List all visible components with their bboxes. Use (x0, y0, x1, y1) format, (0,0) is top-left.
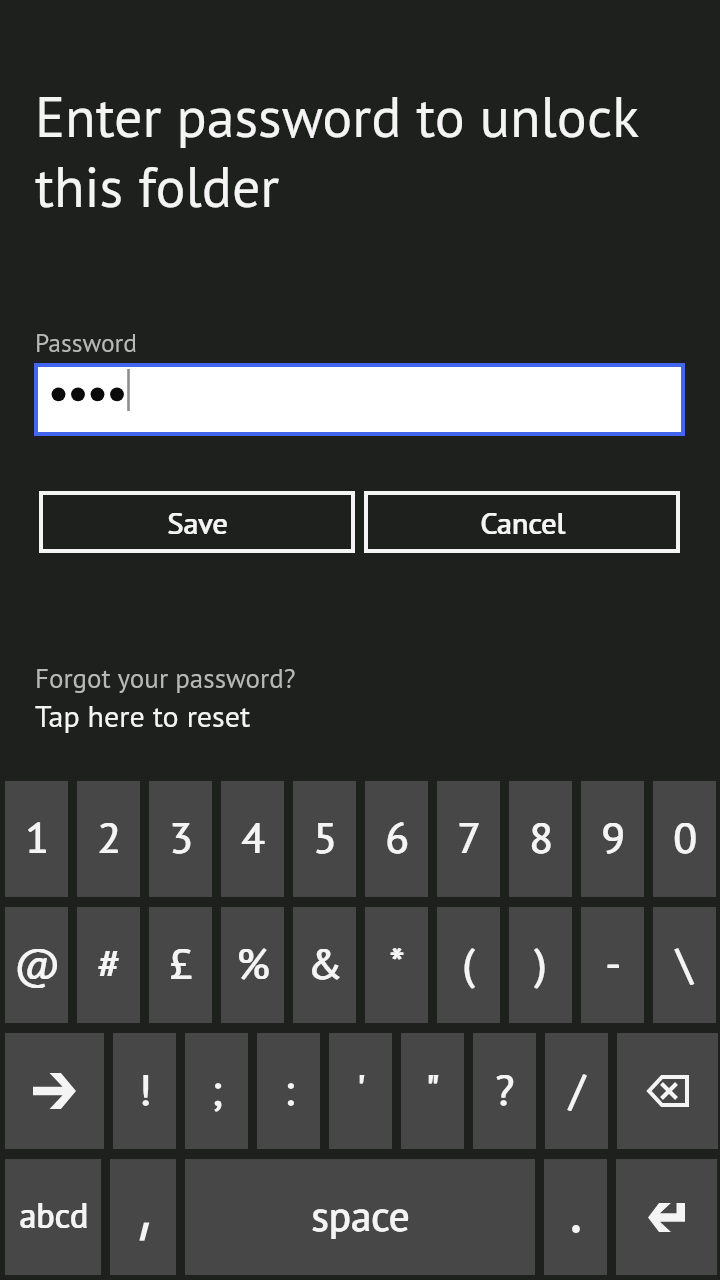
staticText: / (569, 1061, 585, 1117)
staticText: % (236, 935, 270, 991)
staticText: 4 (242, 809, 266, 865)
staticText: ? (495, 1061, 514, 1117)
button[interactable]: Save (39, 491, 355, 553)
button[interactable]: 9 (581, 781, 644, 897)
staticText: 4 (241, 809, 265, 865)
button[interactable]: & (293, 907, 356, 1023)
staticText: 0 (674, 809, 698, 865)
button[interactable]: 3 (149, 781, 212, 897)
button[interactable]: ' (329, 1033, 392, 1149)
staticText: ! (138, 1061, 152, 1117)
staticText: 7 (458, 809, 482, 865)
staticText: ? (496, 1061, 515, 1117)
staticText: * (390, 935, 406, 991)
staticText: * (389, 935, 405, 991)
staticText: / (570, 1061, 586, 1117)
button[interactable]: 1 (5, 781, 68, 897)
button[interactable]: - (581, 907, 644, 1023)
staticText: ) (534, 935, 547, 991)
staticText: 0 (673, 809, 697, 865)
staticText: @ (15, 935, 61, 991)
staticText: - (606, 935, 622, 991)
staticText: % (237, 935, 271, 991)
button[interactable]: / (545, 1033, 608, 1149)
staticText: \ (677, 935, 694, 991)
button[interactable]: * (365, 907, 428, 1023)
staticText: 3 (169, 809, 193, 865)
staticText: Cancel (481, 503, 566, 542)
staticText: Password (35, 326, 138, 359)
staticText: 1 (26, 809, 50, 865)
button[interactable]: 4 (221, 781, 284, 897)
staticText: 2 (98, 809, 122, 865)
staticText: : (285, 1061, 295, 1117)
button[interactable]: ( (437, 907, 500, 1023)
button[interactable]: # (77, 907, 140, 1023)
button[interactable]: Backspace (617, 1033, 718, 1149)
button[interactable]: 5 (293, 781, 356, 897)
staticText: 1 (25, 809, 49, 865)
staticText: £ (170, 935, 194, 991)
staticText: Cancel (480, 503, 565, 542)
button[interactable]: Comma (110, 1159, 176, 1275)
button[interactable]: abcd (5, 1159, 101, 1275)
button[interactable]: 7 (437, 781, 500, 897)
button[interactable] (38, 367, 681, 432)
staticText: 7 (457, 809, 481, 865)
button[interactable]: 8 (509, 781, 572, 897)
staticText: 9 (601, 809, 625, 865)
button[interactable]: 0 (653, 781, 716, 897)
staticText: 5 (313, 809, 337, 865)
staticText: " (425, 1061, 440, 1117)
staticText: - (605, 935, 621, 991)
staticText: Tap here to reset (35, 696, 251, 735)
staticText: ( (463, 935, 476, 991)
staticText: 8 (530, 809, 554, 865)
button[interactable]: " (401, 1033, 464, 1149)
staticText: 3 (170, 809, 194, 865)
staticText: @ (14, 935, 60, 991)
staticText: Enter password to unlock this folder (35, 80, 675, 223)
button[interactable]: ; (185, 1033, 248, 1149)
button[interactable]: Period (544, 1159, 607, 1275)
staticText: 6 (386, 809, 410, 865)
staticText: abcd (19, 1193, 88, 1237)
staticText: # (98, 935, 122, 991)
button[interactable]: : (257, 1033, 320, 1149)
button[interactable]: @ (5, 907, 68, 1023)
staticText: Save (168, 503, 229, 542)
staticText: 2 (97, 809, 121, 865)
button[interactable]: space (185, 1159, 535, 1275)
staticText: space (312, 1189, 411, 1242)
staticText: ) (535, 935, 548, 991)
staticText: : (284, 1061, 294, 1117)
button[interactable]: 2 (77, 781, 140, 897)
staticText: ; (212, 1061, 224, 1117)
button[interactable]: ) (509, 907, 572, 1023)
staticText: abcd (20, 1193, 89, 1237)
staticText: # (97, 935, 121, 991)
staticText: £ (169, 935, 193, 991)
button[interactable]: % (221, 907, 284, 1023)
button[interactable]: £ (149, 907, 212, 1023)
button[interactable]: ? (473, 1033, 536, 1149)
button[interactable]: 6 (365, 781, 428, 897)
staticText: 9 (602, 809, 626, 865)
staticText: & (308, 935, 344, 991)
button[interactable]: ! (113, 1033, 176, 1149)
staticText: 8 (529, 809, 553, 865)
staticText: ! (139, 1061, 153, 1117)
staticText: " (426, 1061, 441, 1117)
button[interactable]: Cancel (364, 491, 680, 553)
staticText: Save (167, 503, 228, 542)
staticText: space (311, 1189, 410, 1242)
staticText: ( (462, 935, 475, 991)
button[interactable]: \ (653, 907, 716, 1023)
button[interactable]: Enter (616, 1159, 717, 1275)
staticText: ' (357, 1061, 367, 1117)
button[interactable]: Next (5, 1033, 104, 1149)
staticText: ' (356, 1061, 366, 1117)
staticText: & (307, 935, 343, 991)
button[interactable]: Forgot your password? (35, 661, 296, 735)
staticText: ; (211, 1061, 223, 1117)
